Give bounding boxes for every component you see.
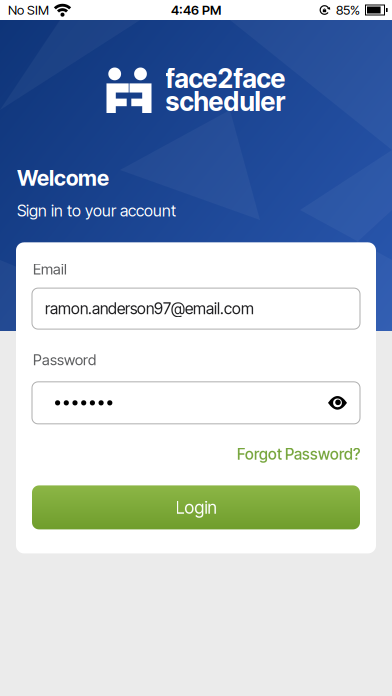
staticText: ramon.anderson97@email.com — [45, 299, 254, 318]
button[interactable]: Password — [32, 382, 360, 424]
staticText: scheduler — [165, 86, 285, 117]
staticText: No SIM — [8, 2, 49, 18]
staticText: 85% — [336, 2, 360, 18]
button[interactable]: Show password — [328, 396, 360, 409]
staticText: 4:46 PM — [171, 2, 221, 18]
staticText: Forgot Password? — [237, 445, 360, 463]
button[interactable]: ramon.anderson97@email.com — [32, 288, 360, 329]
button[interactable]: Login — [32, 485, 360, 529]
button[interactable]: Forgot Password? — [237, 445, 360, 463]
staticText: Login — [175, 497, 216, 518]
staticText: Email — [33, 260, 67, 278]
staticText: face2face — [165, 63, 285, 94]
staticText: Password — [33, 351, 96, 369]
staticText: Welcome — [17, 165, 109, 191]
staticText: Sign in to your account — [17, 201, 176, 220]
